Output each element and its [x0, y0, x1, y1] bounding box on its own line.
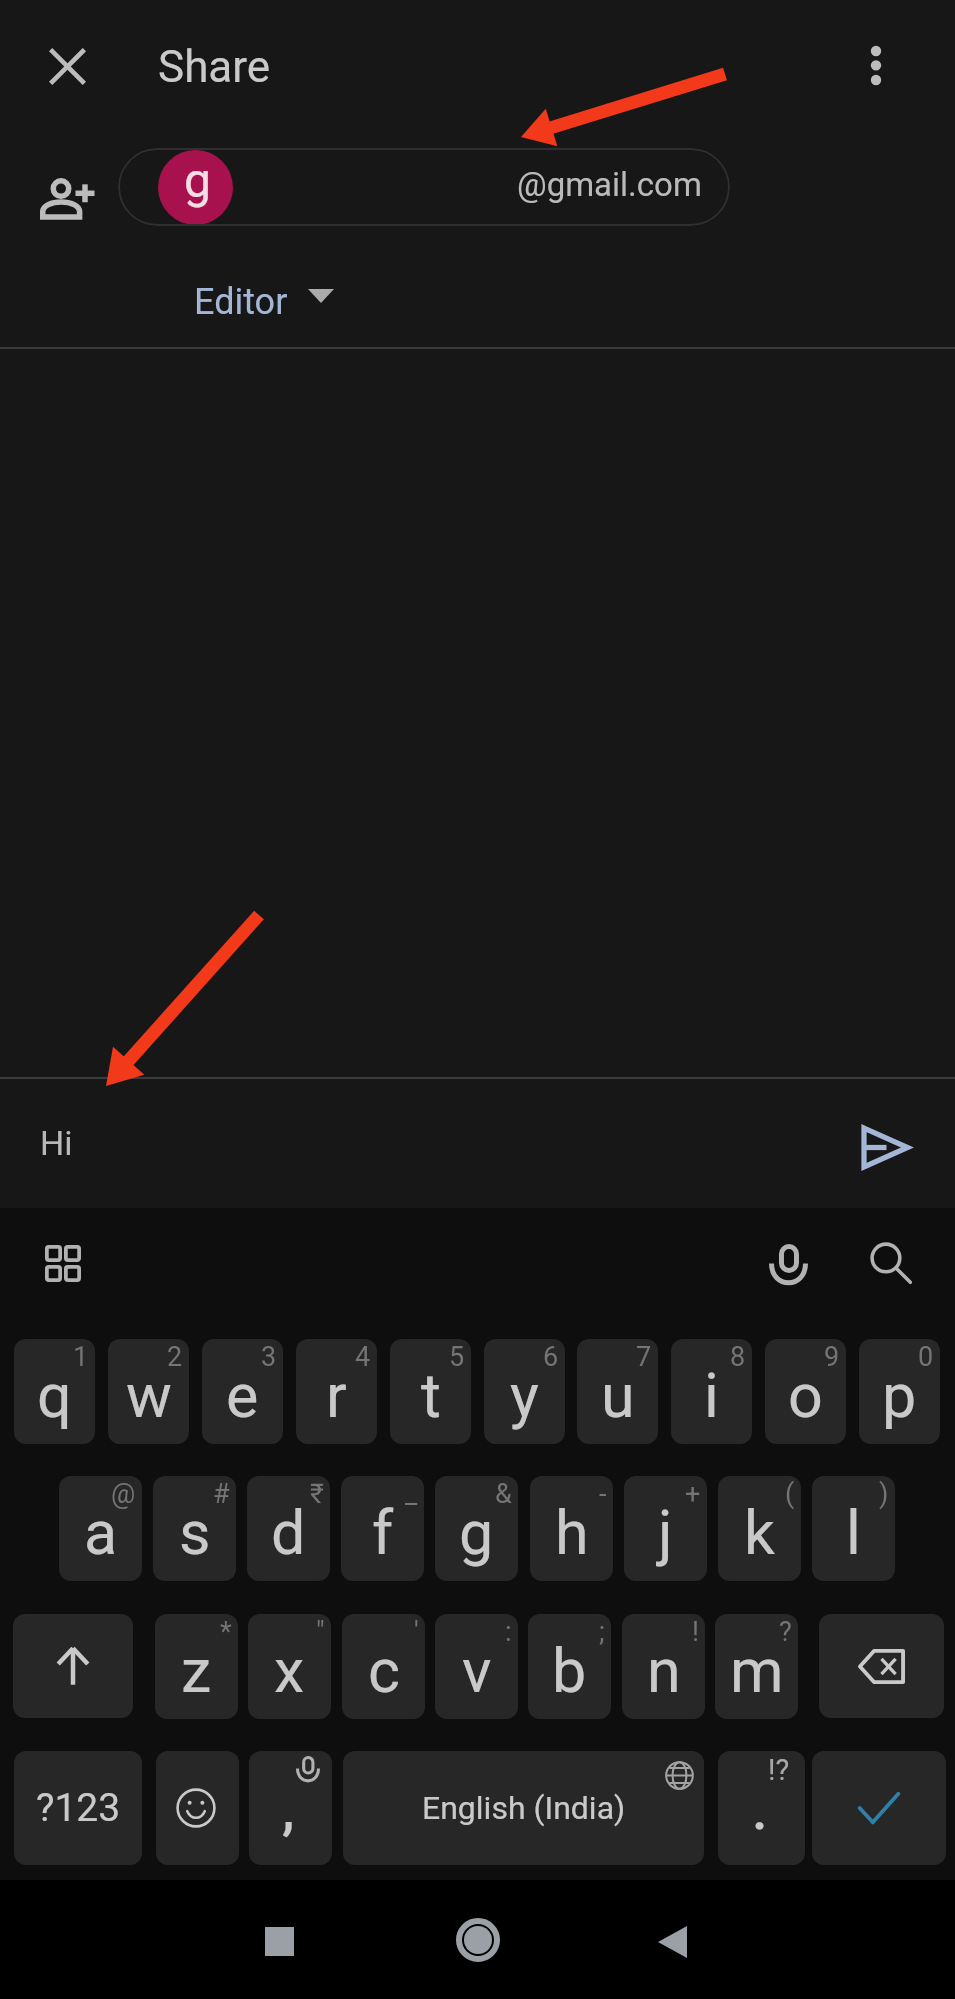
staticText: m — [730, 1635, 784, 1706]
button[interactable]: 7 — [577, 1339, 658, 1444]
staticText: u — [601, 1360, 635, 1431]
button[interactable]: ! — [622, 1614, 705, 1719]
staticText: b — [552, 1635, 587, 1706]
button[interactable]: @ — [59, 1476, 142, 1581]
button[interactable]: Home — [452, 1914, 504, 1966]
staticText: 1 — [73, 1341, 89, 1373]
staticText: z — [181, 1635, 212, 1706]
staticText: 3 — [261, 1341, 277, 1373]
button[interactable]: Search — [865, 1237, 917, 1289]
staticText: ( — [785, 1478, 795, 1510]
button[interactable]: & — [435, 1476, 518, 1581]
button[interactable]: Shift — [13, 1614, 133, 1718]
staticText: !? — [768, 1753, 790, 1787]
button[interactable]: 6 — [484, 1339, 565, 1444]
staticText: ₹ — [310, 1478, 324, 1510]
staticText: _ — [405, 1478, 418, 1510]
staticText: 9 — [824, 1341, 840, 1373]
button[interactable]: " — [248, 1614, 331, 1719]
button[interactable]: * — [155, 1614, 238, 1719]
button[interactable]: ' — [342, 1614, 425, 1719]
staticText: h — [555, 1497, 589, 1568]
staticText: x — [274, 1635, 305, 1706]
button[interactable]: Enter — [812, 1751, 946, 1865]
staticText: ) — [879, 1478, 889, 1510]
button[interactable]: Voice input — [762, 1237, 814, 1289]
staticText: # — [213, 1478, 230, 1510]
staticText: 6 — [543, 1341, 559, 1373]
staticText: Editor — [194, 281, 288, 323]
button[interactable]: Recents — [253, 1915, 305, 1967]
staticText: ? — [779, 1616, 792, 1648]
button[interactable]: Comma, voice typing — [249, 1751, 332, 1865]
button[interactable]: Toolbox — [37, 1237, 89, 1289]
staticText: i — [704, 1360, 719, 1431]
staticText: 7 — [636, 1341, 652, 1373]
staticText: Hi — [40, 1123, 73, 1163]
button[interactable]: 0 — [859, 1339, 940, 1444]
button[interactable]: ?123 — [14, 1751, 142, 1865]
staticText: c — [368, 1635, 400, 1706]
staticText: t — [421, 1360, 441, 1431]
button[interactable]: Editor — [194, 279, 334, 329]
staticText: @gmail.com — [517, 165, 702, 204]
button[interactable]: Add people — [34, 166, 98, 230]
button[interactable]: - — [530, 1476, 613, 1581]
staticText: Share — [158, 41, 271, 93]
button[interactable]: ? — [715, 1614, 798, 1719]
staticText: . — [752, 1777, 768, 1843]
button[interactable]: Send — [843, 1106, 925, 1188]
staticText: v — [462, 1635, 492, 1706]
button[interactable]: Close — [42, 41, 94, 93]
staticText: d — [271, 1497, 306, 1568]
staticText: ! — [692, 1616, 699, 1648]
staticText: f — [372, 1497, 394, 1568]
button[interactable]: ( — [718, 1476, 801, 1581]
staticText: y — [510, 1360, 539, 1431]
button[interactable]: 4 — [296, 1339, 377, 1444]
staticText: w — [126, 1360, 172, 1431]
staticText: o — [788, 1360, 823, 1431]
button[interactable]: 9 — [765, 1339, 846, 1444]
staticText: 8 — [730, 1341, 746, 1373]
staticText: g — [459, 1497, 494, 1568]
button[interactable]: Emoji — [156, 1751, 239, 1865]
button[interactable]: # — [153, 1476, 236, 1581]
staticText: e — [226, 1360, 259, 1431]
button[interactable]: ₹ — [247, 1476, 330, 1581]
staticText: * — [220, 1616, 232, 1648]
staticText: English (India) — [422, 1789, 626, 1827]
button[interactable]: : — [435, 1614, 518, 1719]
staticText: n — [647, 1635, 681, 1706]
staticText: l — [846, 1497, 861, 1568]
button[interactable]: g — [118, 148, 730, 226]
button[interactable]: 8 — [671, 1339, 752, 1444]
button[interactable]: Period — [718, 1751, 805, 1865]
staticText: j — [658, 1497, 673, 1568]
staticText: a — [84, 1497, 118, 1568]
button[interactable]: Back — [646, 1916, 698, 1968]
button[interactable]: 2 — [108, 1339, 189, 1444]
button[interactable]: Backspace — [819, 1614, 944, 1718]
staticText: ' — [414, 1616, 419, 1648]
staticText: ; — [599, 1616, 605, 1648]
staticText: k — [744, 1497, 775, 1568]
staticText: " — [316, 1616, 325, 1648]
button[interactable]: ; — [528, 1614, 611, 1719]
button[interactable]: 5 — [390, 1339, 471, 1444]
staticText: 4 — [355, 1341, 371, 1373]
button[interactable]: _ — [341, 1476, 424, 1581]
button[interactable]: + — [624, 1476, 707, 1581]
staticText: 5 — [449, 1341, 465, 1373]
button[interactable]: More options — [850, 41, 902, 93]
staticText: s — [179, 1497, 211, 1568]
staticText: , — [282, 1776, 295, 1842]
button[interactable]: 1 — [14, 1339, 95, 1444]
button[interactable]: English (India) — [343, 1751, 704, 1865]
staticText: p — [882, 1360, 917, 1431]
staticText: & — [495, 1478, 512, 1510]
button[interactable]: ) — [812, 1476, 895, 1581]
staticText: - — [599, 1478, 607, 1510]
staticText: g — [184, 152, 211, 208]
button[interactable]: 3 — [202, 1339, 283, 1444]
